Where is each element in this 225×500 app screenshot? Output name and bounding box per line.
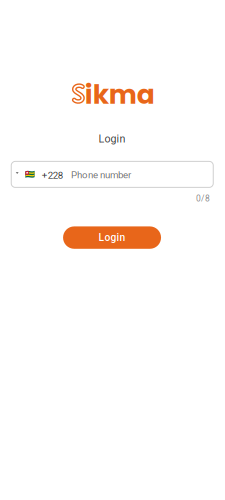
staticText: Login bbox=[98, 232, 125, 244]
button[interactable]: Country code, Togo +228 bbox=[15, 165, 71, 189]
staticText: +228 bbox=[42, 170, 63, 181]
button[interactable]: 🇹🇬 bbox=[11, 161, 213, 187]
button[interactable]: Login bbox=[63, 226, 161, 249]
staticText: ikma bbox=[85, 76, 155, 113]
staticText: Login bbox=[99, 133, 126, 145]
staticText: Phone number bbox=[71, 169, 131, 181]
staticText: 0/8 bbox=[196, 193, 210, 203]
staticText: 🇹🇬 bbox=[25, 170, 35, 179]
